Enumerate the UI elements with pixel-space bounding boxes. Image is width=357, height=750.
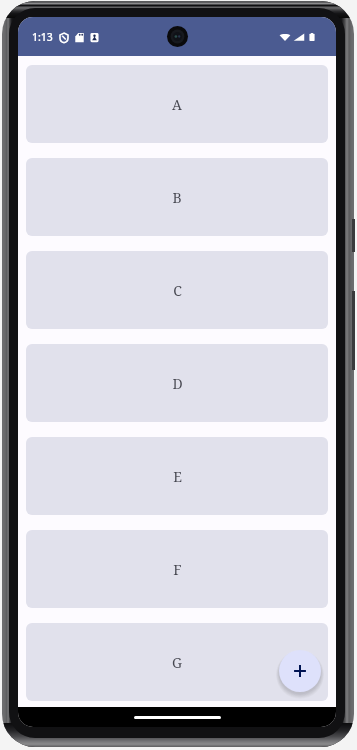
staticText: G [172, 653, 182, 672]
button[interactable]: B [26, 158, 328, 236]
staticText: A [172, 95, 182, 114]
button[interactable]: E [26, 437, 328, 515]
staticText: D [172, 374, 183, 393]
button[interactable]: Add [279, 650, 321, 692]
button[interactable]: G [26, 623, 328, 701]
staticText: C [173, 281, 182, 300]
staticText: 1:13 [32, 30, 53, 44]
staticText: B [172, 188, 182, 207]
staticText: F [173, 560, 182, 579]
button[interactable]: A [26, 65, 328, 143]
staticText: E [173, 467, 182, 486]
button[interactable]: D [26, 344, 328, 422]
button[interactable]: C [26, 251, 328, 329]
button[interactable]: F [26, 530, 328, 608]
